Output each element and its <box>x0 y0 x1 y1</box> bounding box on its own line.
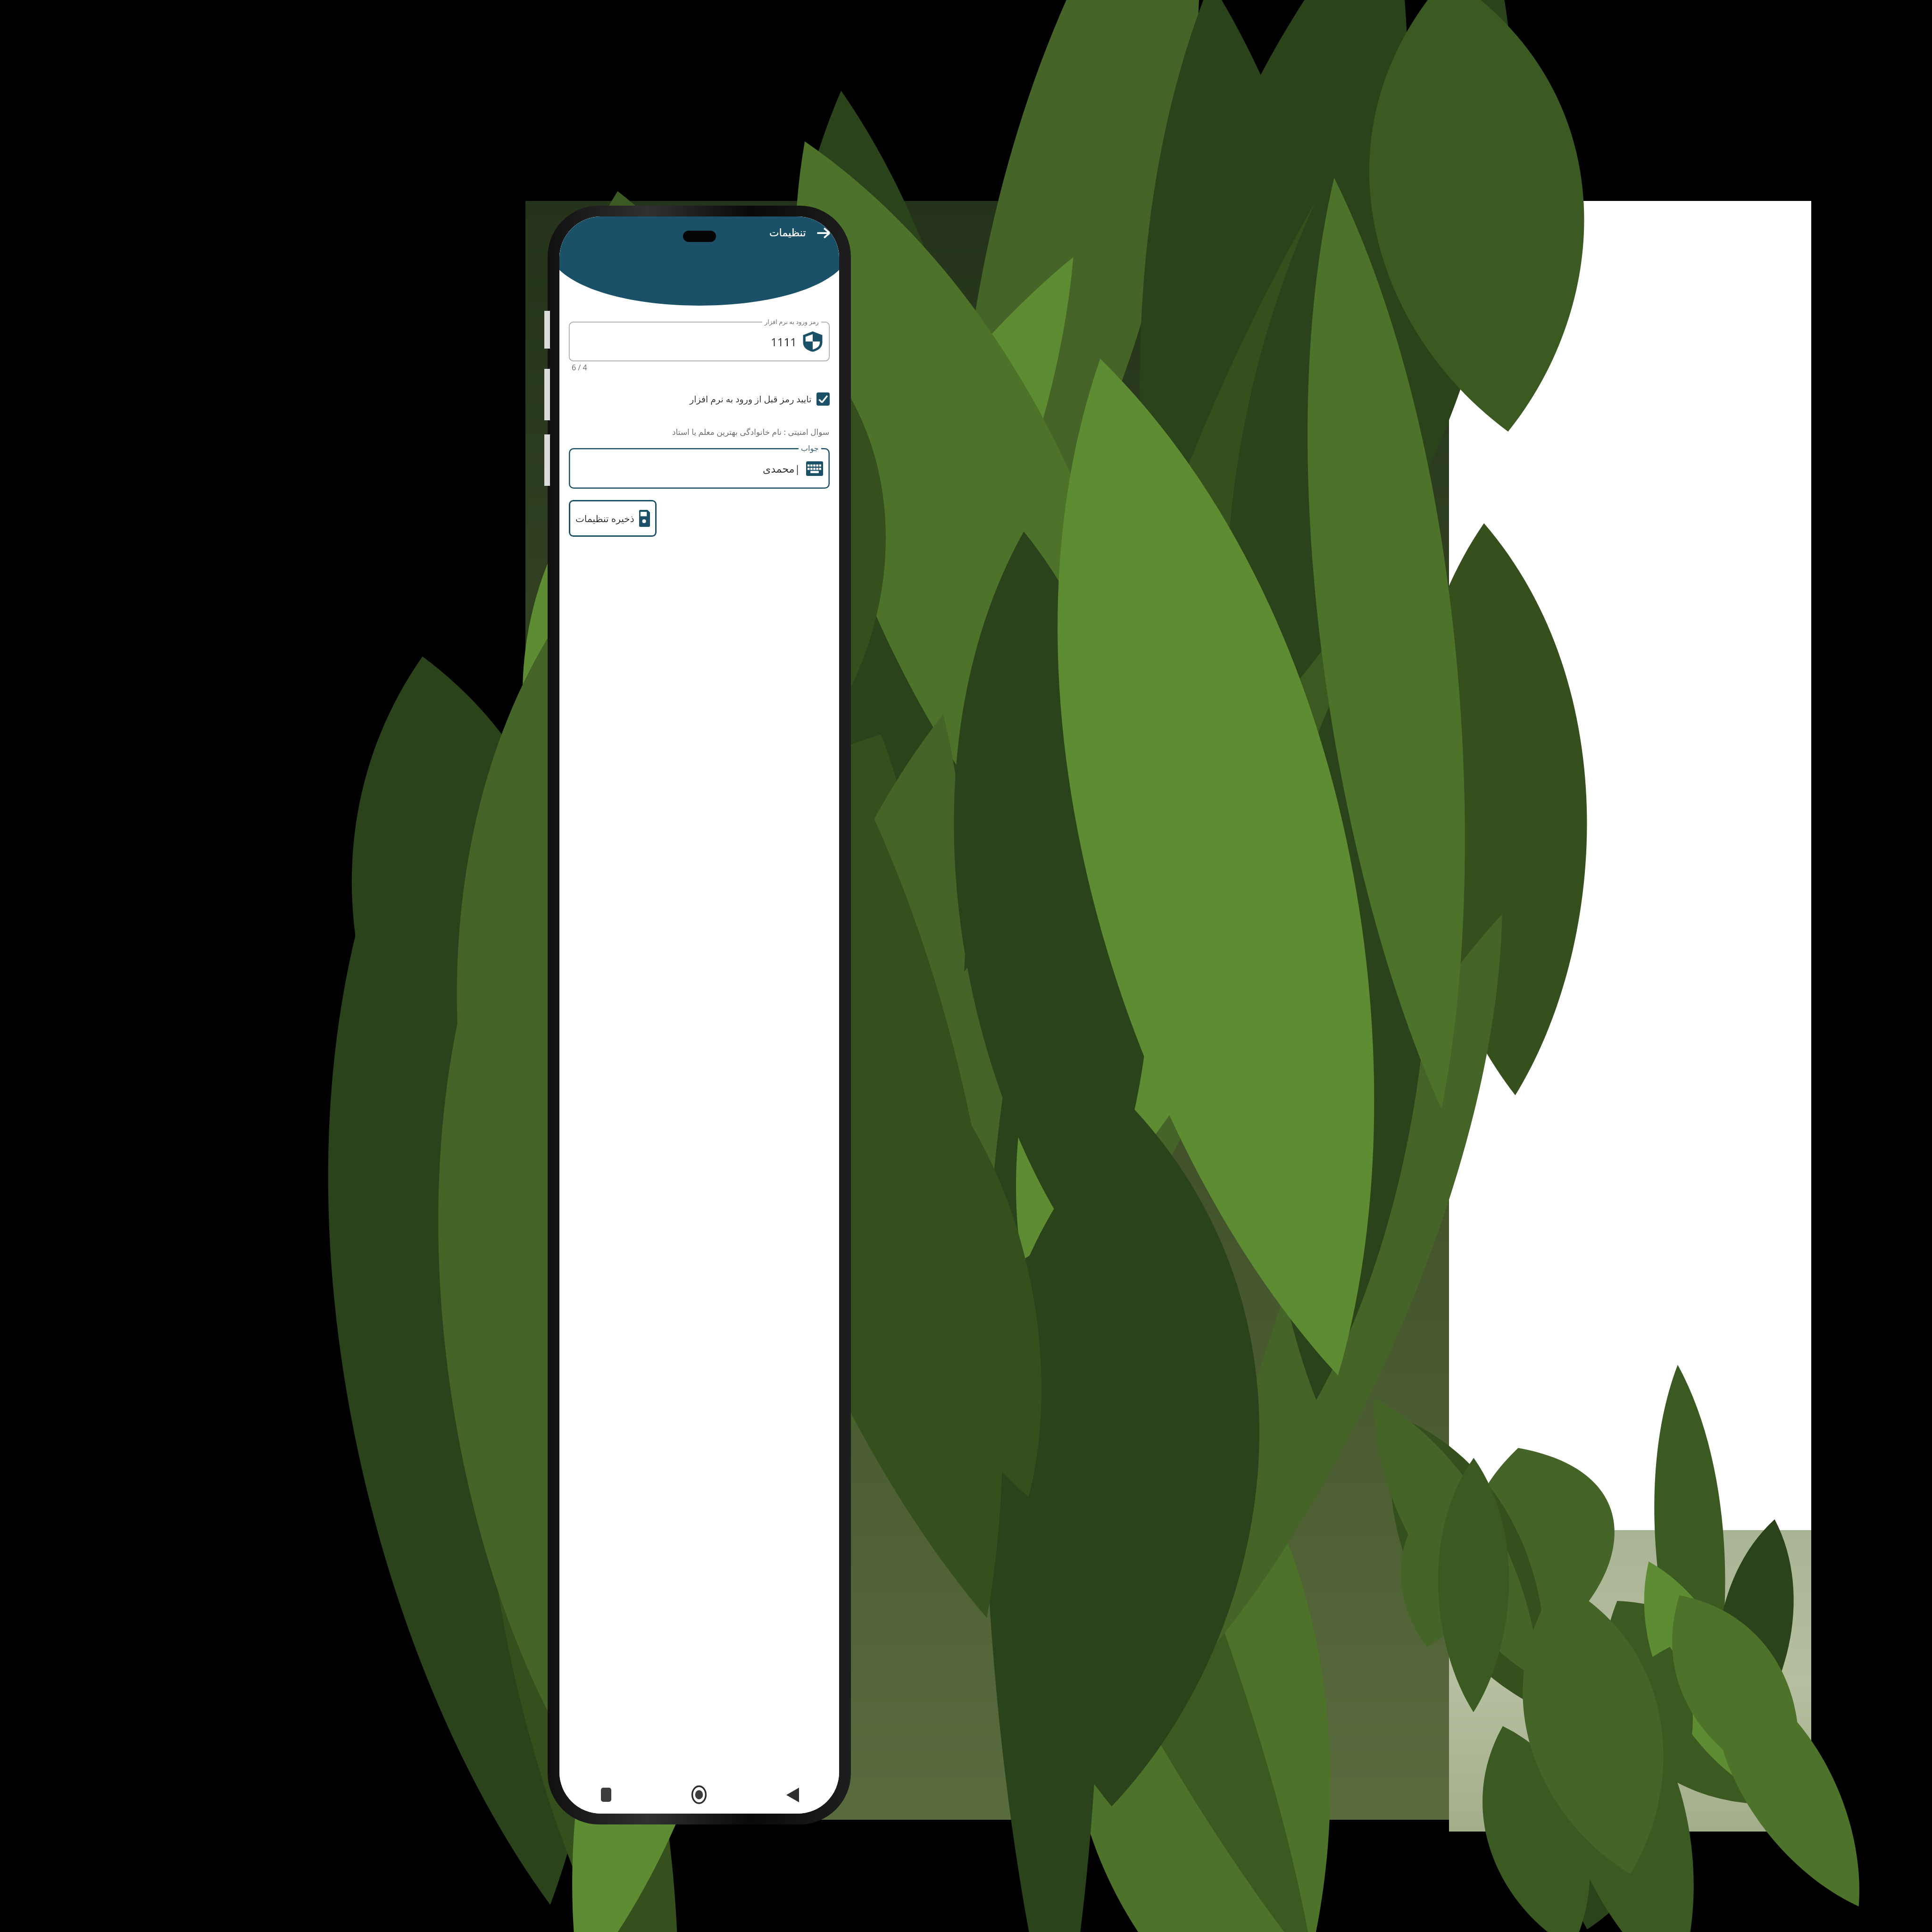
button[interactable]: Back <box>814 223 833 243</box>
staticText: جواب <box>801 444 819 453</box>
staticText: 1111 <box>771 334 797 350</box>
staticText: تایید رمز قبل از ورود به نرم افزار <box>690 393 812 405</box>
button[interactable]: Recents <box>559 1776 652 1814</box>
staticText: سوال امنیتی : نام خانوادگی بهترین معلم ی… <box>672 426 830 437</box>
staticText: رمز ورود به نرم افزار <box>765 317 819 326</box>
staticText: 6 / 4 <box>572 362 587 373</box>
staticText: تنظیمات <box>769 227 806 239</box>
staticText: ذخیره تنظیمات <box>575 512 634 525</box>
button[interactable]: تایید رمز قبل از ورود به نرم افزار <box>569 392 830 406</box>
staticText: محمدی| <box>763 461 800 475</box>
button[interactable]: Home <box>652 1776 746 1814</box>
button[interactable]: ذخیره تنظیمات <box>569 500 657 537</box>
button[interactable]: Back <box>746 1776 839 1814</box>
